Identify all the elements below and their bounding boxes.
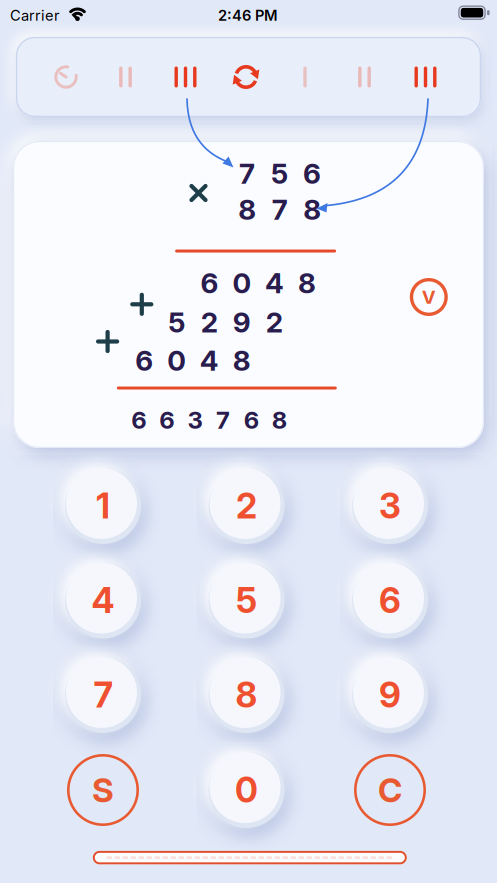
staticText: Carrier: [10, 7, 60, 24]
button[interactable]: [277, 45, 333, 109]
button[interactable]: 5: [201, 555, 291, 645]
staticText: 2: [266, 306, 283, 339]
staticText: 9: [379, 675, 401, 715]
button[interactable]: [91, 849, 409, 867]
staticText: 1: [96, 486, 110, 526]
staticText: 8: [272, 406, 287, 434]
staticText: 2: [201, 306, 218, 339]
button[interactable]: [157, 45, 213, 109]
staticText: 6: [135, 344, 153, 377]
button[interactable]: 6: [345, 555, 435, 645]
staticText: 6: [201, 266, 219, 299]
staticText: 3: [187, 406, 202, 434]
button[interactable]: 0: [201, 745, 291, 835]
button[interactable]: [38, 45, 94, 109]
staticText: 4: [265, 266, 284, 299]
staticText: 9: [233, 306, 251, 339]
staticText: 8: [303, 193, 321, 226]
button[interactable]: V: [407, 275, 451, 319]
staticText: 0: [235, 770, 258, 810]
staticText: 5: [271, 157, 288, 190]
staticText: 5: [168, 306, 185, 339]
staticText: 0: [167, 344, 186, 377]
staticText: 6: [159, 406, 174, 434]
button[interactable]: 7: [58, 650, 148, 740]
button[interactable]: 1: [58, 461, 148, 551]
button[interactable]: 3: [345, 461, 435, 551]
staticText: V: [422, 286, 436, 308]
staticText: 4: [91, 580, 114, 621]
staticText: 6: [379, 580, 401, 621]
button[interactable]: 4: [58, 555, 148, 645]
button[interactable]: [397, 45, 453, 109]
staticText: 6: [303, 157, 321, 190]
staticText: 4: [200, 344, 219, 377]
staticText: 6: [131, 406, 146, 434]
staticText: 8: [298, 266, 316, 299]
button[interactable]: C: [350, 750, 430, 830]
staticText: 6: [244, 406, 259, 434]
button[interactable]: 2: [201, 461, 291, 551]
staticText: 7: [272, 193, 288, 226]
staticText: 7: [239, 157, 255, 190]
staticText: 8: [238, 193, 256, 226]
staticText: 3: [379, 486, 401, 526]
staticText: 2: [236, 486, 257, 526]
staticText: 2:46 PM: [218, 7, 278, 24]
staticText: 8: [235, 675, 257, 715]
button[interactable]: [336, 45, 392, 109]
button[interactable]: [218, 45, 274, 109]
staticText: 7: [93, 675, 112, 715]
staticText: 8: [233, 344, 251, 377]
button[interactable]: 8: [201, 650, 291, 740]
staticText: 7: [216, 406, 230, 434]
staticText: 0: [233, 266, 252, 299]
staticText: C: [378, 770, 402, 810]
button[interactable]: S: [63, 750, 143, 830]
button[interactable]: [97, 45, 153, 109]
staticText: 5: [236, 580, 257, 621]
staticText: S: [92, 770, 114, 810]
button[interactable]: 9: [345, 650, 435, 740]
